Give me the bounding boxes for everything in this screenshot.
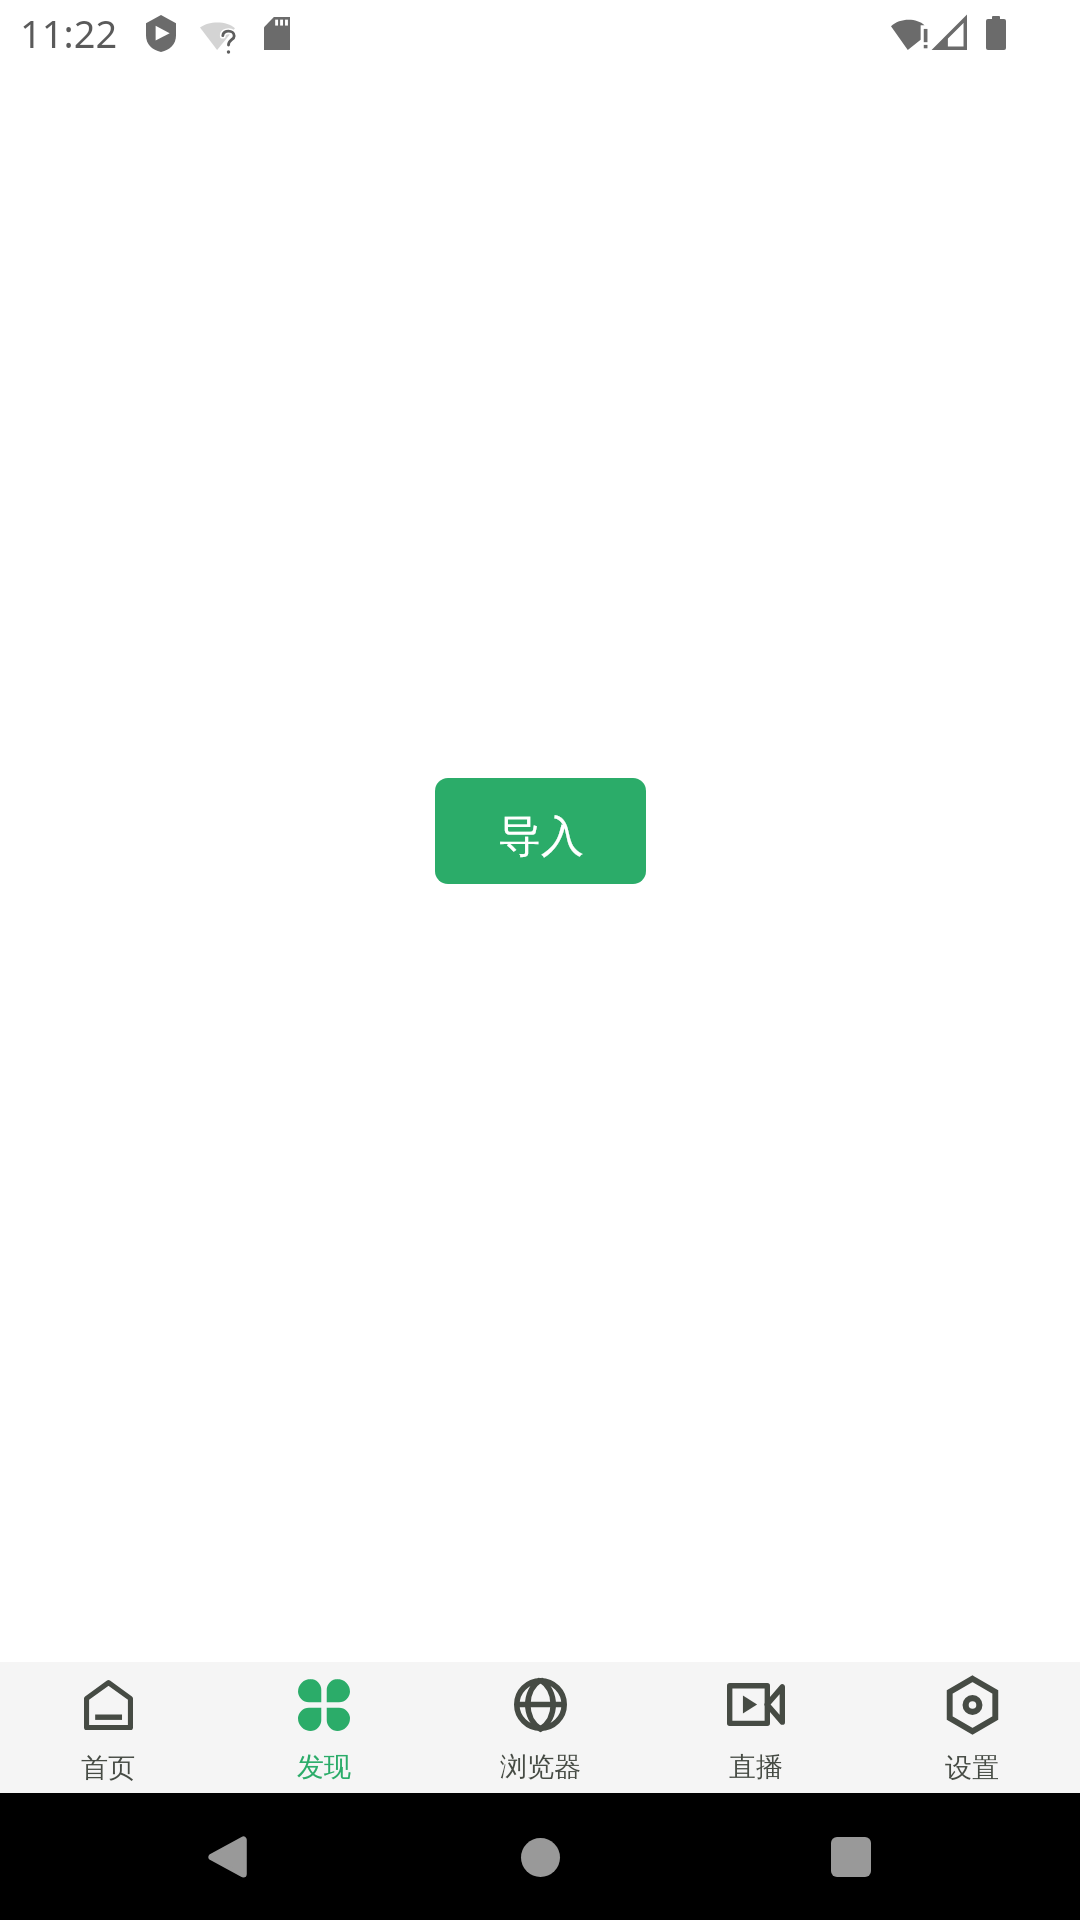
staticText: 发现 [297,1750,351,1784]
button[interactable]: 设置 [864,1662,1080,1793]
button[interactable]: Back [166,1807,286,1907]
button[interactable]: 首页 [0,1662,216,1793]
button[interactable]: 直播 [648,1662,864,1793]
button[interactable]: Home [480,1807,600,1907]
staticText: 首页 [81,1751,135,1785]
button[interactable]: 浏览器 [432,1662,648,1793]
staticText: 11:22 [20,7,118,59]
staticText: 设置 [945,1751,999,1785]
staticText: 浏览器 [500,1750,581,1784]
button[interactable]: 导入 [435,778,646,884]
staticText: 导入 [498,810,584,864]
staticText: 直播 [729,1750,783,1784]
button[interactable]: 发现 [216,1662,432,1793]
button[interactable]: Recents [791,1807,911,1907]
